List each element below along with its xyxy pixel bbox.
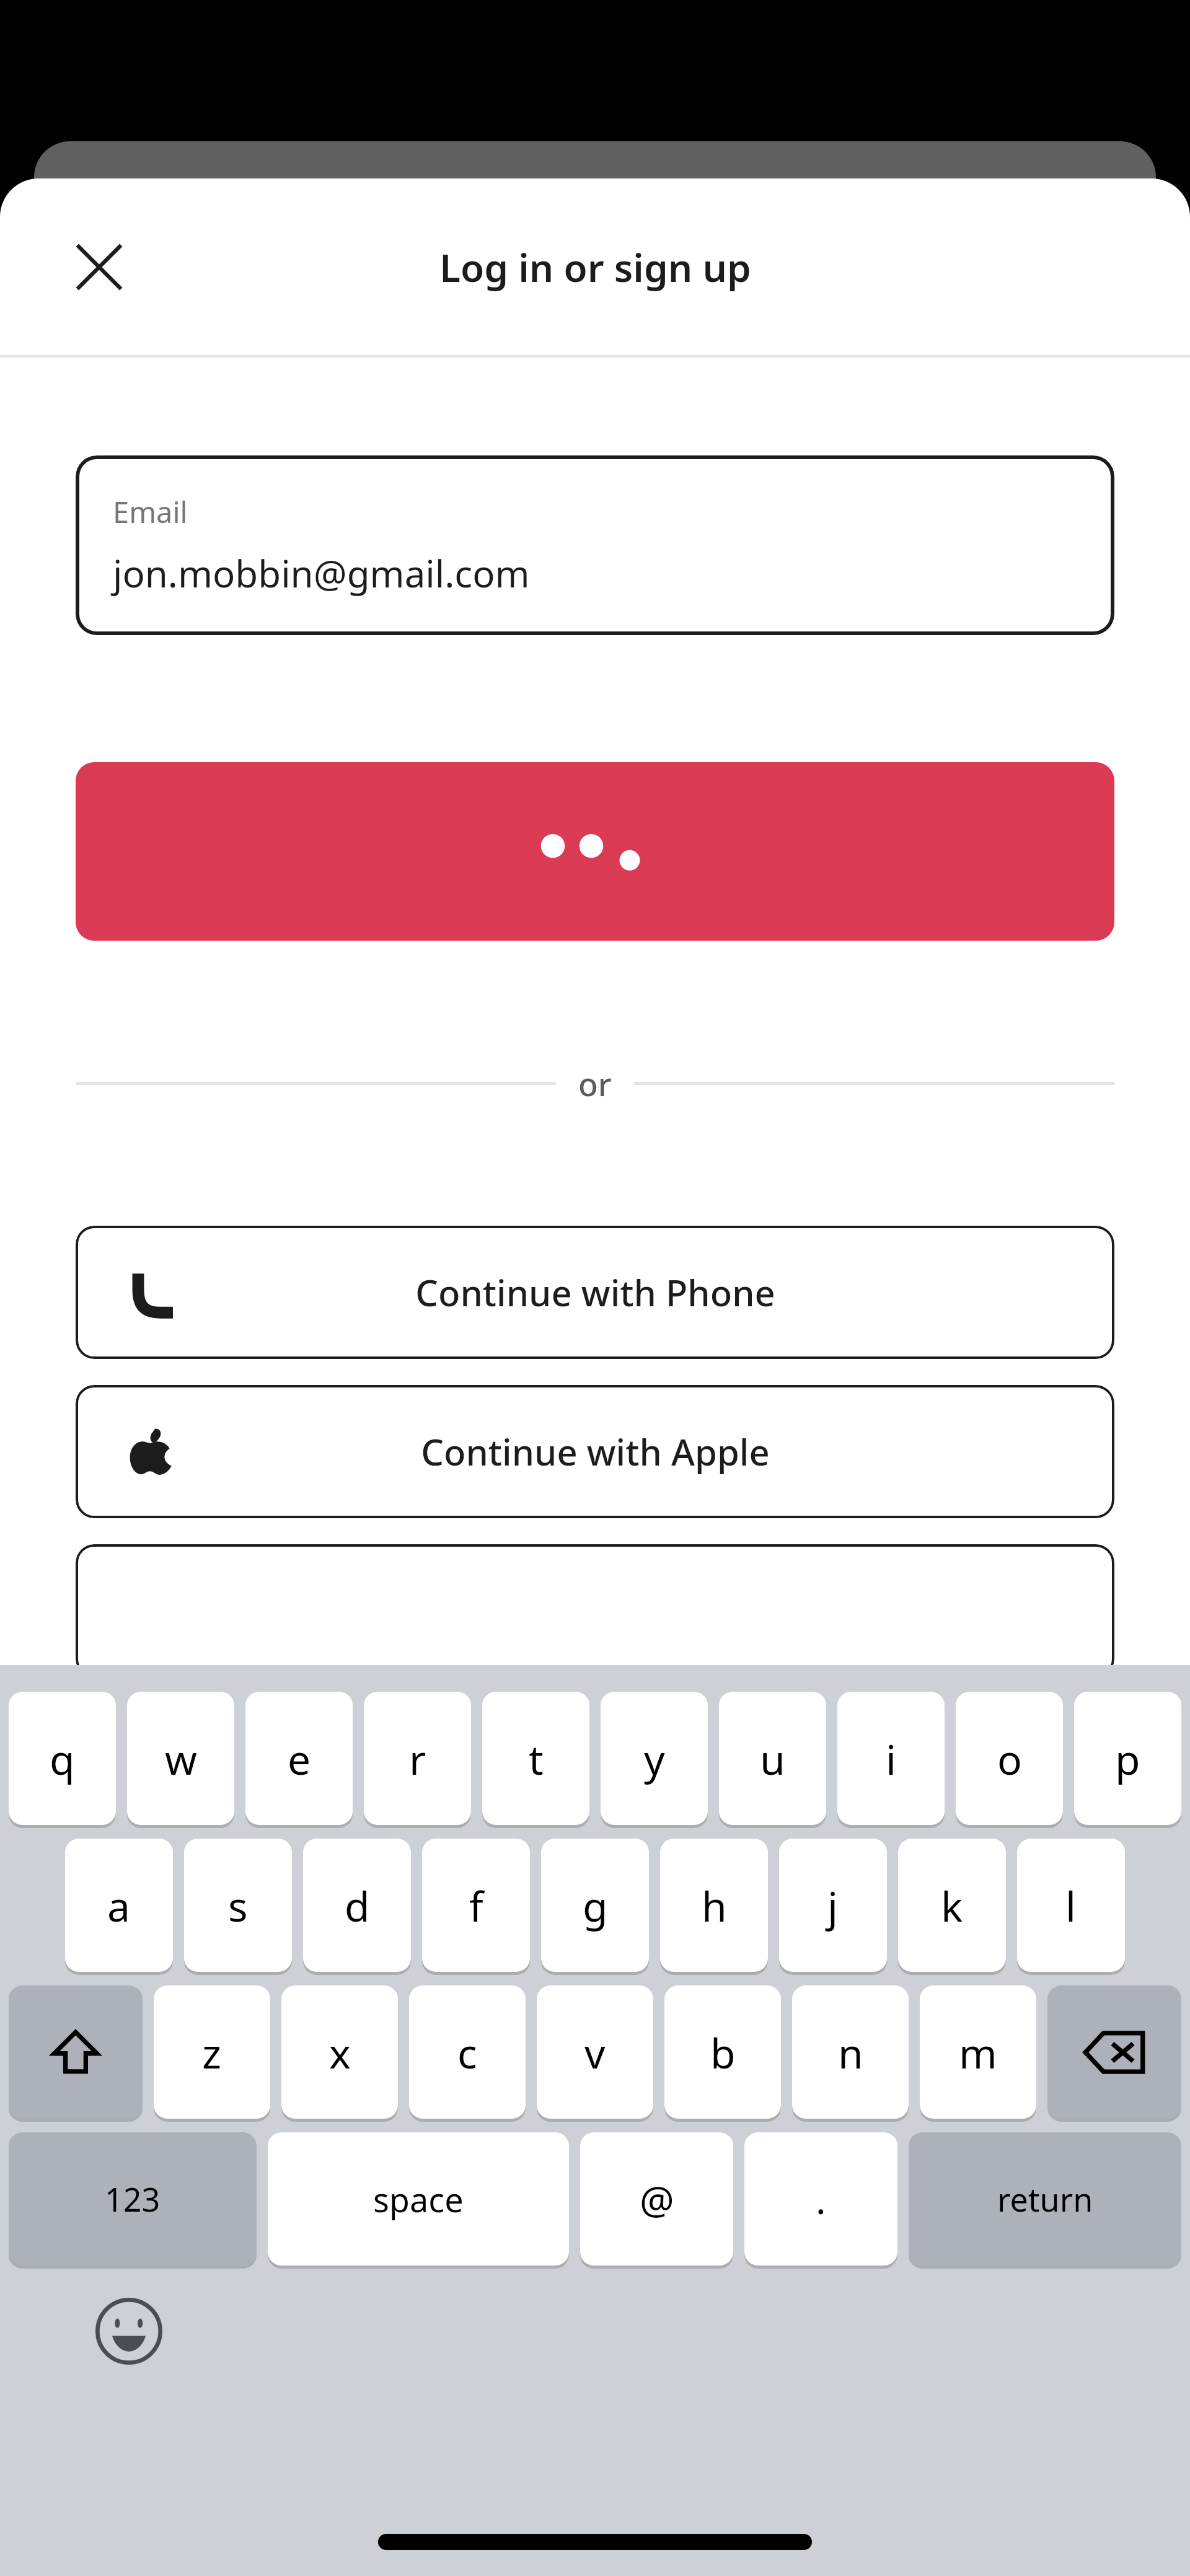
staticText: Continue with Apple: [421, 1427, 770, 1476]
button[interactable]: c: [409, 1985, 526, 2119]
button[interactable]: s: [184, 1839, 292, 1972]
staticText: Continue with Phone: [415, 1268, 775, 1317]
staticText: z: [202, 2024, 222, 2080]
button[interactable]: 123: [9, 2132, 257, 2266]
staticText: e: [288, 1731, 311, 1787]
button[interactable]: y: [601, 1692, 708, 1825]
button[interactable]: b: [664, 1985, 781, 2119]
button[interactable]: o: [956, 1692, 1063, 1825]
button[interactable]: j: [779, 1839, 887, 1972]
staticText: o: [997, 1731, 1022, 1787]
button[interactable]: Continue with Apple: [76, 1385, 1114, 1518]
button[interactable]: return: [909, 2132, 1181, 2266]
button[interactable]: .: [744, 2132, 897, 2266]
staticText: l: [1065, 1878, 1077, 1933]
staticText: n: [838, 2024, 863, 2080]
staticText: jon.mobbin@gmail.com: [113, 548, 530, 599]
button[interactable]: m: [920, 1985, 1036, 2119]
staticText: .: [816, 2173, 826, 2225]
button[interactable]: Email: [76, 455, 1114, 635]
staticText: or: [578, 1062, 612, 1106]
button[interactable]: f: [422, 1839, 530, 1972]
button[interactable]: Continue: [76, 762, 1114, 941]
button[interactable]: d: [303, 1839, 411, 1972]
staticText: c: [457, 2024, 477, 2080]
button[interactable]: p: [1074, 1692, 1181, 1825]
button[interactable]: Backspace: [1047, 1985, 1181, 2119]
button[interactable]: i: [837, 1692, 945, 1825]
staticText: u: [760, 1731, 785, 1787]
button[interactable]: w: [127, 1692, 234, 1825]
button[interactable]: e: [245, 1692, 353, 1825]
staticText: return: [997, 2177, 1093, 2221]
staticText: j: [827, 1878, 839, 1933]
button[interactable]: space: [268, 2132, 569, 2266]
staticText: Email: [113, 492, 188, 532]
button[interactable]: Emoji keyboard: [93, 2295, 165, 2367]
button[interactable]: g: [541, 1839, 649, 1972]
staticText: k: [941, 1878, 963, 1933]
button[interactable]: k: [898, 1839, 1006, 1972]
button[interactable]: z: [154, 1985, 270, 2119]
staticText: h: [702, 1878, 727, 1933]
staticText: y: [644, 1731, 665, 1787]
button[interactable]: v: [537, 1985, 653, 2119]
staticText: b: [710, 2024, 736, 2080]
button[interactable]: h: [660, 1839, 768, 1972]
staticText: 123: [105, 2177, 161, 2221]
staticText: p: [1115, 1731, 1140, 1787]
button[interactable]: l: [1017, 1839, 1125, 1972]
button[interactable]: Close: [64, 232, 134, 302]
staticText: g: [583, 1878, 608, 1933]
staticText: a: [107, 1878, 131, 1933]
staticText: space: [373, 2176, 464, 2222]
button[interactable]: n: [792, 1985, 909, 2119]
staticText: x: [329, 2024, 351, 2080]
staticText: i: [886, 1731, 897, 1787]
button[interactable]: u: [719, 1692, 826, 1825]
staticText: f: [469, 1878, 483, 1933]
button[interactable]: a: [65, 1839, 173, 1972]
staticText: s: [228, 1878, 248, 1933]
staticText: m: [959, 2024, 997, 2080]
button[interactable]: r: [364, 1692, 471, 1825]
button[interactable]: @: [580, 2132, 733, 2266]
button[interactable]: Continue with Phone: [76, 1226, 1114, 1359]
button[interactable]: Shift: [9, 1985, 143, 2119]
staticText: v: [584, 2024, 606, 2080]
button[interactable]: t: [482, 1692, 589, 1825]
staticText: t: [529, 1731, 544, 1787]
staticText: @: [640, 2173, 674, 2225]
button[interactable]: q: [9, 1692, 116, 1825]
staticText: q: [50, 1731, 75, 1787]
staticText: d: [345, 1878, 370, 1933]
button[interactable]: x: [281, 1985, 398, 2119]
button[interactable]: Continue with Google: [76, 1544, 1114, 1677]
staticText: r: [409, 1731, 426, 1787]
staticText: Log in or sign up: [439, 241, 751, 293]
staticText: w: [165, 1731, 197, 1787]
